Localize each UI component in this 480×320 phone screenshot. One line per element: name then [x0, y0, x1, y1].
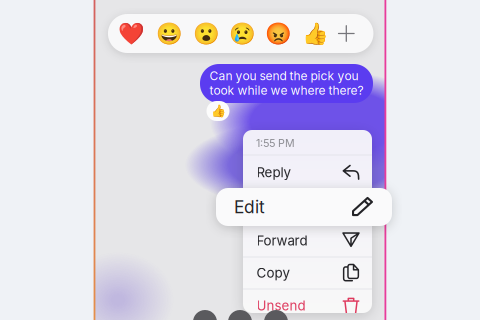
staticText: 😮 — [193, 21, 220, 46]
button[interactable]: React with thumbs up — [298, 15, 332, 51]
button[interactable]: React with heart — [115, 15, 149, 51]
staticText: Unsend — [257, 297, 306, 314]
staticText: ❤️ — [118, 21, 145, 46]
button[interactable]: Unsend — [243, 289, 372, 313]
button[interactable]: React with tears — [225, 15, 259, 51]
staticText: 😀 — [156, 21, 183, 46]
staticText: Can you send the pick you took while we … — [209, 69, 363, 98]
button[interactable]: Forward — [243, 225, 372, 257]
staticText: Copy — [257, 265, 290, 281]
button[interactable]: Edit — [216, 188, 392, 226]
staticText: 1:55 PM — [256, 136, 295, 149]
staticText: Reply — [257, 164, 291, 180]
button[interactable]: More reactions — [331, 17, 361, 49]
staticText: 😢 — [229, 21, 256, 46]
staticText: 😡 — [265, 21, 292, 46]
staticText: 👍 — [302, 21, 329, 46]
button[interactable]: Reply — [243, 155, 372, 188]
button[interactable]: Can you send the pick you took while we … — [200, 64, 373, 103]
button[interactable]: React with anger — [262, 15, 296, 51]
button[interactable]: React with surprise — [189, 15, 223, 51]
staticText: Edit — [234, 196, 265, 217]
staticText: Forward — [257, 232, 308, 249]
staticText: 👍 — [210, 104, 225, 118]
button[interactable]: Copy — [243, 257, 372, 289]
button[interactable]: React with grin — [153, 15, 187, 51]
